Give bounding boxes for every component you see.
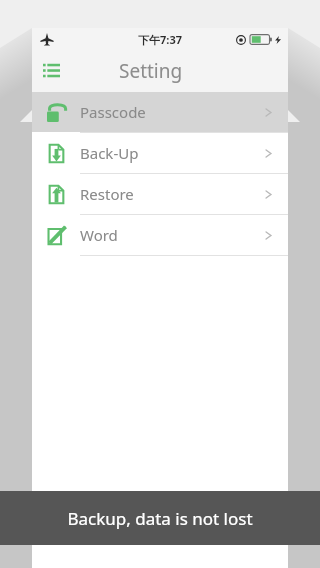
staticText: Back-Up bbox=[80, 143, 139, 163]
staticText: Restore bbox=[80, 184, 134, 204]
button[interactable]: Restore bbox=[32, 174, 288, 214]
staticText: Word bbox=[80, 225, 118, 245]
other: Airplane mode bbox=[40, 32, 54, 46]
button[interactable]: Passcode bbox=[32, 92, 288, 132]
other: Location bbox=[236, 35, 246, 45]
button[interactable]: Menu bbox=[32, 52, 70, 90]
staticText: 下午7:37 bbox=[138, 32, 182, 47]
staticText: Passcode bbox=[80, 102, 146, 122]
button[interactable]: Back-Up bbox=[32, 133, 288, 173]
staticText: Setting bbox=[119, 58, 183, 84]
staticText: Backup, data is not lost bbox=[67, 507, 253, 530]
button[interactable]: Word bbox=[32, 215, 288, 255]
